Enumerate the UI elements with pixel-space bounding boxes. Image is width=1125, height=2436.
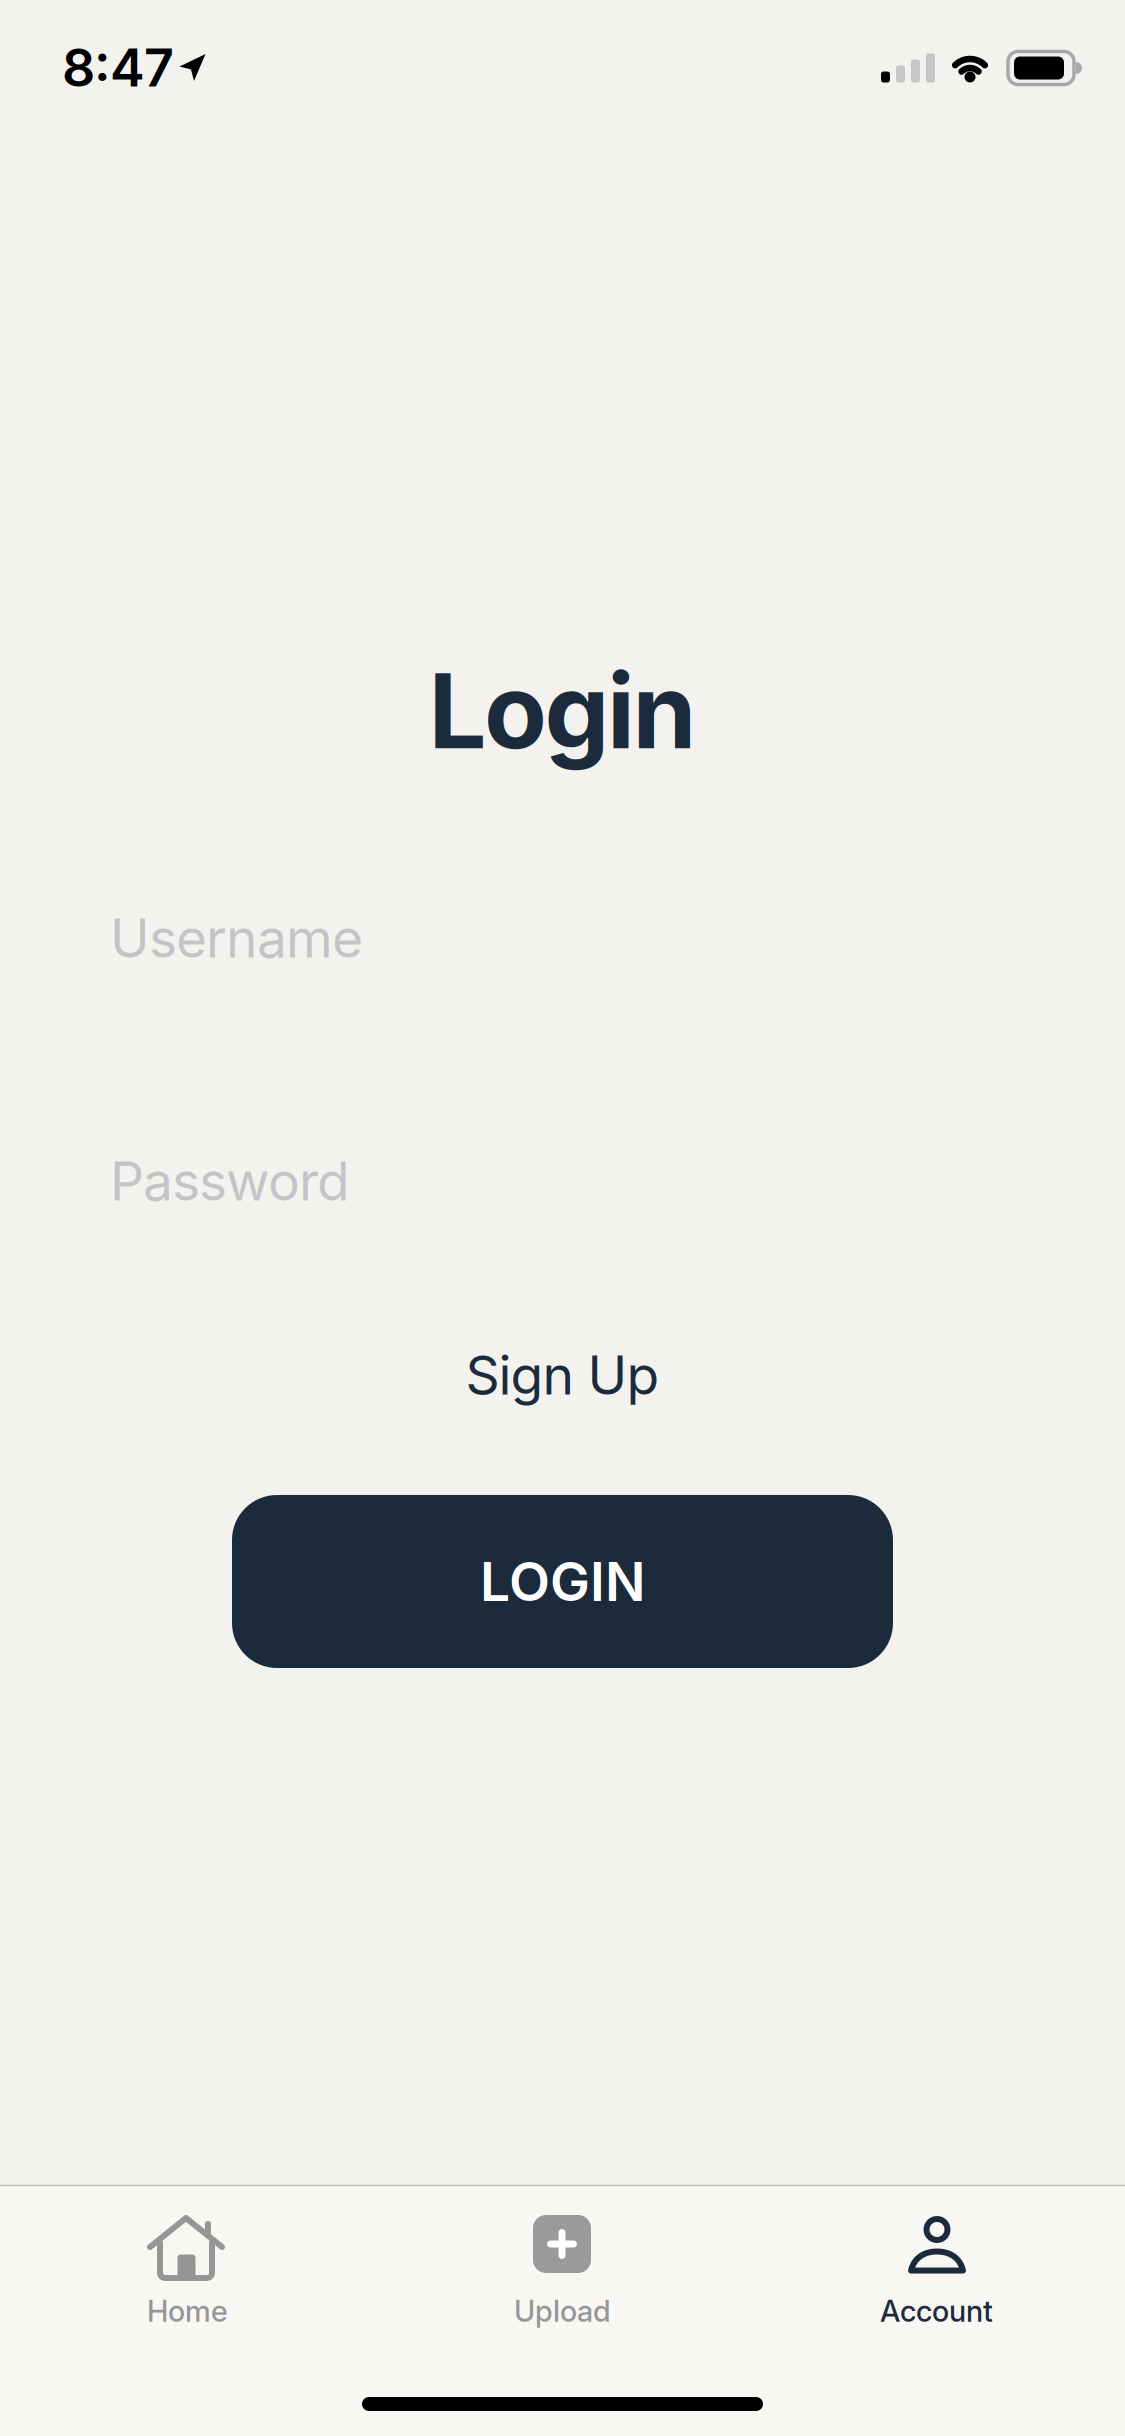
staticText: Password — [110, 1149, 350, 1212]
button[interactable]: Sign Up — [362, 1320, 762, 1430]
button[interactable]: Account — [767, 2185, 1107, 2345]
staticText: Account — [880, 2294, 993, 2328]
staticText: 8:47 — [62, 37, 174, 98]
staticText: LOGIN — [480, 1550, 645, 1613]
button[interactable]: Home — [17, 2185, 357, 2345]
button[interactable]: Upload — [392, 2185, 732, 2345]
staticText: Sign Up — [465, 1343, 659, 1406]
staticText: Username — [110, 906, 363, 969]
staticText: Upload — [514, 2294, 611, 2328]
button[interactable]: Password — [110, 1116, 1015, 1246]
button[interactable]: LOGIN — [232, 1495, 893, 1668]
button[interactable]: Username — [110, 873, 1015, 1003]
staticText: Login — [428, 650, 696, 771]
staticText: Home — [147, 2294, 228, 2328]
